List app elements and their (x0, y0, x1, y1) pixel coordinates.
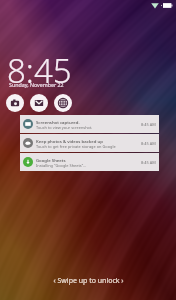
button[interactable]: Screenshot captured. (20, 115, 159, 133)
staticText: 8:45 (7, 48, 72, 93)
staticText: ‹ Swipe up to unlock › (53, 276, 124, 286)
staticText: Screenshot captured. (36, 119, 80, 125)
button[interactable]: Browser (54, 94, 72, 112)
staticText: Touch to view your screenshot. (36, 125, 93, 130)
staticText: Installing “Google Sheets”… (36, 163, 87, 168)
button[interactable]: Mail (30, 94, 48, 112)
button[interactable]: Google Sheets (20, 153, 159, 171)
staticText: 8:45 AM (141, 122, 156, 127)
staticText: Google Sheets (36, 157, 66, 163)
staticText: Keep photos & videos backed up (36, 138, 103, 144)
button[interactable]: Camera (6, 94, 24, 112)
staticText: Sunday, November 22 (9, 81, 64, 88)
staticText: 8:45 AM (141, 141, 156, 146)
staticText: Touch to get free private storage on Goo… (36, 144, 116, 149)
button[interactable]: ‹ Swipe up to unlock › (53, 276, 124, 286)
staticText: 8:45 AM (141, 160, 156, 165)
button[interactable]: Keep photos & videos backed up (20, 134, 159, 152)
